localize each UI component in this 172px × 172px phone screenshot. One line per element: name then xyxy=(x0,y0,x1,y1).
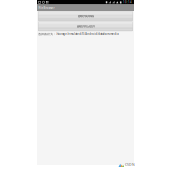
staticText: 选择文件并上传文件 xyxy=(76,25,94,28)
button[interactable]: 选择文件并上传文件 xyxy=(38,22,133,31)
staticText: 10:14 xyxy=(123,0,132,4)
staticText: 选择文件夹并扫描 xyxy=(77,14,93,18)
staticText: FileBrowser xyxy=(38,6,54,10)
button[interactable]: 选择文件夹并扫描 xyxy=(38,11,133,21)
staticText: 选择路径为：/storage/emulated/0/Android/data/c… xyxy=(38,32,118,36)
staticText: CSDN xyxy=(125,162,135,167)
